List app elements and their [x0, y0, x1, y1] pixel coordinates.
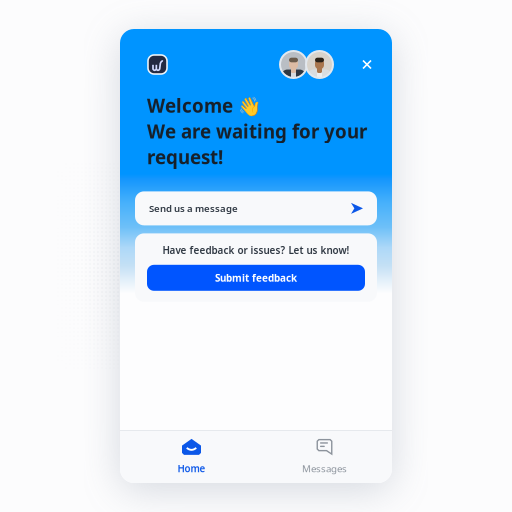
button[interactable]: Close — [356, 53, 378, 75]
button[interactable]: Send us a message — [135, 191, 377, 225]
staticText: request! — [147, 145, 223, 169]
staticText: We are waiting for your — [147, 119, 367, 144]
button[interactable]: Submit feedback — [147, 265, 365, 291]
staticText: Send us a message — [149, 202, 238, 215]
button[interactable]: Messages — [258, 429, 391, 484]
staticText: Have feedback or issues? Let us know! — [162, 243, 349, 257]
staticText: Welcome 👋 — [147, 93, 261, 118]
staticText: Submit feedback — [215, 271, 297, 284]
button[interactable]: Home — [125, 429, 258, 484]
staticText: Home — [177, 462, 205, 475]
staticText: Messages — [302, 462, 347, 475]
